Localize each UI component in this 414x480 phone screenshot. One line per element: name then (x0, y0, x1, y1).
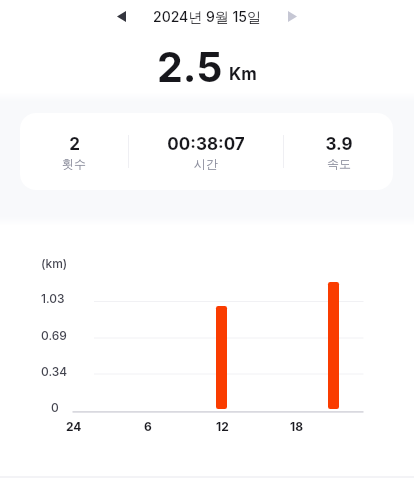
staticText: 2.5 (157, 42, 223, 92)
staticText: 3.9 (325, 134, 353, 155)
button[interactable]: 2 (20, 113, 128, 190)
button[interactable]: Previous day (105, 0, 137, 33)
button[interactable]: 00:38:07 (129, 113, 283, 190)
staticText: 0.69 (41, 328, 67, 343)
button[interactable]: Next day (276, 0, 308, 33)
staticText: 0.34 (41, 364, 68, 379)
staticText: (km) (41, 256, 68, 271)
staticText: 1.03 (41, 291, 65, 306)
staticText: 속도 (327, 156, 351, 171)
staticText: Km (229, 64, 257, 85)
staticText: 18 (290, 419, 303, 434)
staticText: 12 (216, 419, 229, 434)
staticText: 00:38:07 (167, 134, 245, 155)
staticText: 0 (51, 400, 59, 415)
staticText: 횟수 (62, 156, 86, 171)
staticText: 2024년 9월 15일 (153, 8, 262, 26)
staticText: 시간 (194, 156, 218, 171)
staticText: 2 (69, 134, 80, 155)
staticText: 6 (144, 419, 152, 434)
staticText: 24 (66, 419, 82, 434)
button[interactable]: 3.9 (284, 113, 393, 190)
